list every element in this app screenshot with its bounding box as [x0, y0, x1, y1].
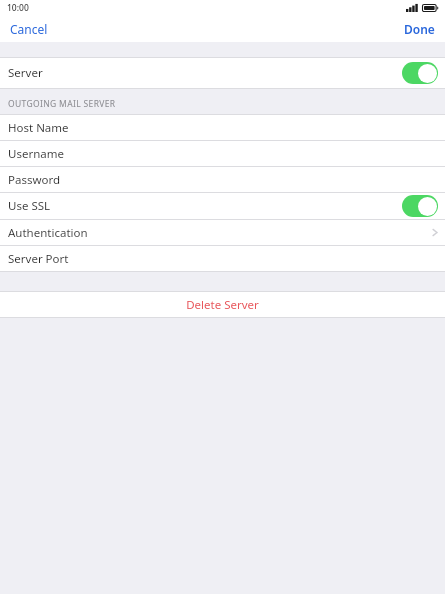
other: Open authentication options [432, 227, 438, 238]
staticText: Username [8, 146, 64, 162]
button[interactable]: Cancel [0, 16, 58, 42]
button[interactable]: Use SSL [0, 193, 445, 219]
button[interactable]: Username [0, 141, 445, 166]
button[interactable]: Server [0, 58, 445, 88]
button[interactable]: Done [394, 16, 445, 42]
button[interactable]: Toggle setting [402, 62, 438, 84]
button[interactable]: Password [0, 167, 445, 192]
button[interactable]: Authentication [0, 220, 445, 245]
staticText: Authentication [8, 225, 88, 241]
staticText: Cancel [10, 21, 48, 37]
button[interactable]: Delete Server [0, 292, 445, 317]
staticText: Done [404, 21, 435, 37]
button[interactable]: Server Port [0, 246, 445, 271]
staticText: OUTGOING MAIL SERVER [8, 98, 116, 110]
staticText: Server [8, 65, 43, 81]
button[interactable]: Toggle setting [402, 195, 438, 217]
staticText: Host Name [8, 120, 69, 136]
button[interactable]: Host Name [0, 115, 445, 140]
staticText: Delete Server [186, 297, 259, 313]
staticText: Password [8, 172, 61, 188]
staticText: Use SSL [8, 198, 51, 214]
staticText: Server Port [8, 251, 69, 267]
staticText: 10:00 [7, 2, 29, 14]
